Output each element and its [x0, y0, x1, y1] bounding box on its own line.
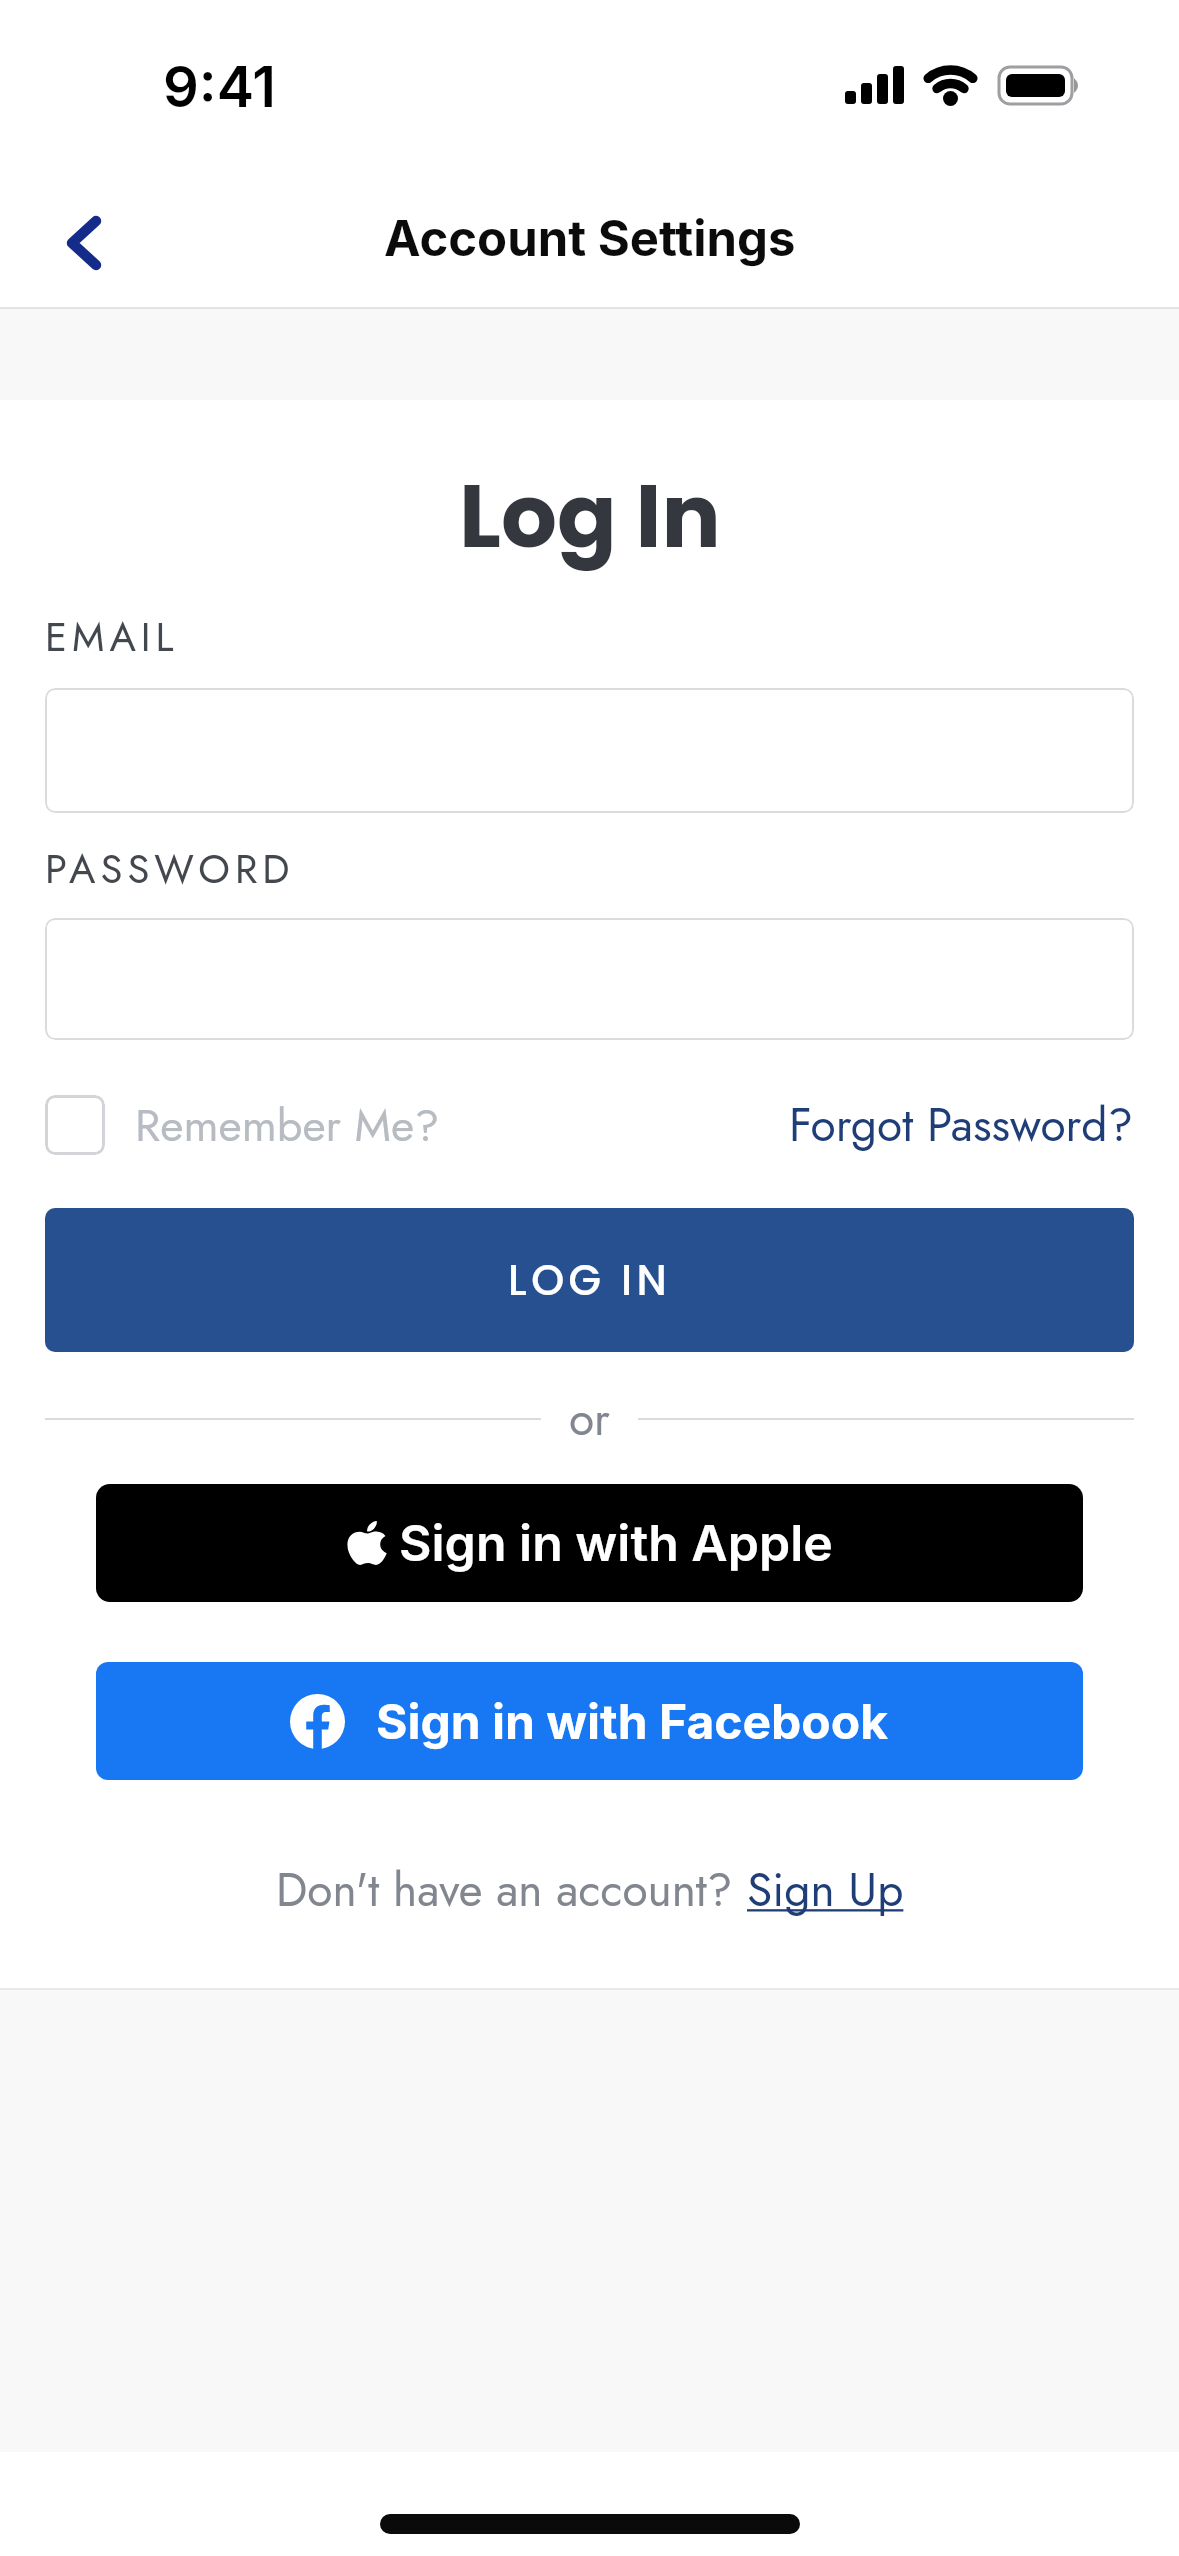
- button[interactable]: [45, 918, 1134, 1040]
- button[interactable]: Sign in with Facebook: [96, 1662, 1083, 1780]
- staticText: 9:41: [163, 53, 276, 121]
- button[interactable]: Forgot Password?: [789, 1092, 1134, 1158]
- staticText: Sign in with Apple: [399, 1513, 833, 1573]
- staticText: Account Settings: [384, 209, 796, 268]
- staticText: Don't have an account?: [276, 1857, 747, 1923]
- staticText: or: [569, 1386, 610, 1452]
- staticText: EMAIL: [45, 608, 179, 666]
- button[interactable]: Sign Up: [747, 1857, 904, 1923]
- staticText: PASSWORD: [45, 840, 295, 898]
- button[interactable]: [50, 209, 116, 277]
- staticText: Remember Me?: [135, 1093, 440, 1158]
- button[interactable]: LOG IN: [45, 1208, 1134, 1352]
- staticText: Sign in with Facebook: [376, 1692, 889, 1750]
- staticText: LOG IN: [508, 1251, 672, 1310]
- button[interactable]: [45, 1095, 105, 1155]
- staticText: Log In: [459, 455, 721, 578]
- button[interactable]: [45, 688, 1134, 813]
- button[interactable]: Sign in with Apple: [96, 1484, 1083, 1602]
